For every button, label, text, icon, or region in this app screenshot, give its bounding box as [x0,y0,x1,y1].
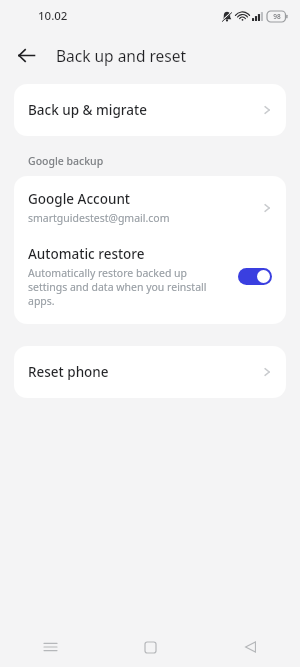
staticText: Back up & migrate [28,101,260,119]
button[interactable]: Automatic restore [14,235,286,324]
staticText: 98 [273,12,281,21]
staticText: 10.02 [38,8,68,24]
staticText: Automatic restore [28,245,145,263]
button[interactable]: Home [100,627,200,667]
button[interactable]: Back up & migrate [14,84,286,136]
button[interactable]: Google Account [14,176,286,235]
button[interactable]: Recent apps [0,627,100,667]
button[interactable]: Back [200,627,300,667]
staticText: Automatically restore backed up settings… [28,266,228,308]
button[interactable]: Back [8,37,44,73]
button[interactable]: Automatic restore, on [238,268,272,285]
staticText: Back up and reset [56,45,187,66]
staticText: smartguidestest@gmail.com [28,211,170,225]
staticText: Google Account [28,190,131,208]
staticText: Reset phone [28,363,260,381]
staticText: Google backup [28,154,104,168]
button[interactable]: Reset phone [14,346,286,398]
